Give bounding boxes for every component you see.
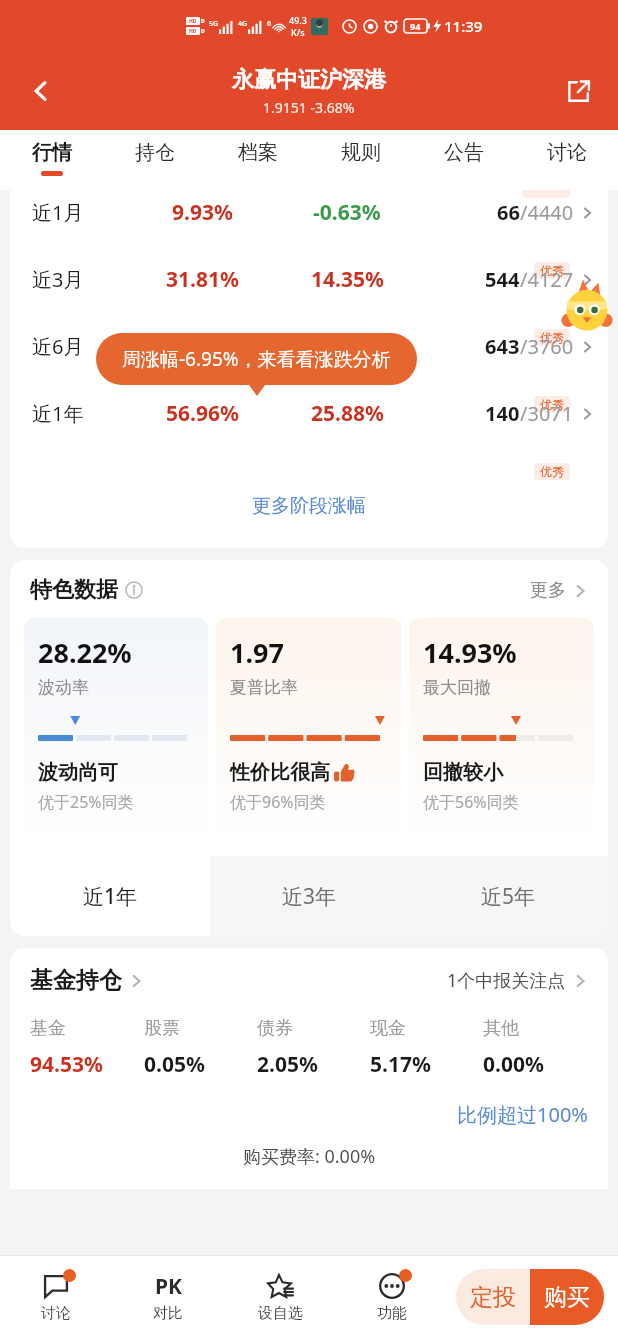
staticText: 1.97 <box>230 634 284 671</box>
staticText: 对比 <box>153 1304 183 1323</box>
button[interactable]: Info <box>125 581 143 599</box>
staticText: D <box>201 18 205 25</box>
staticText: 基金持仓 <box>30 966 122 995</box>
button[interactable]: Assistant <box>556 276 618 338</box>
staticText: 1.9151 -3.68% <box>263 98 355 117</box>
staticText: 近3年 <box>282 882 337 911</box>
button[interactable]: 讨论 <box>0 1256 112 1338</box>
staticText: 更多 <box>530 579 566 602</box>
staticText: 其他 <box>483 1017 519 1040</box>
button[interactable]: 规则 <box>309 130 412 190</box>
staticText: 行情 <box>32 140 72 165</box>
staticText: 643 <box>485 333 520 360</box>
staticText: 回撤较小 <box>423 760 503 785</box>
staticText: 功能 <box>377 1304 407 1323</box>
button[interactable]: 近1年 <box>10 856 210 936</box>
staticText: HD <box>189 18 197 25</box>
staticText: 公告 <box>444 140 484 165</box>
button[interactable]: 近3月 <box>10 265 608 332</box>
button[interactable]: 基金持仓 <box>30 966 144 995</box>
staticText: PK <box>155 1272 182 1301</box>
button[interactable]: 14.93% <box>409 618 594 840</box>
staticText: 26.95% <box>311 332 384 361</box>
button[interactable]: 行情 <box>0 130 103 190</box>
staticText: 优秀 <box>540 330 564 345</box>
button[interactable]: 28.22% <box>24 618 208 840</box>
staticText: 近5年 <box>481 882 536 911</box>
staticText: 近3月 <box>32 266 132 293</box>
button[interactable]: 定投 <box>456 1269 530 1325</box>
button[interactable]: 近1年 <box>10 399 608 466</box>
button[interactable]: 讨论 <box>515 130 618 190</box>
button[interactable]: 1.97 <box>216 618 401 840</box>
staticText: 近1月 <box>32 199 132 226</box>
staticText: 66 <box>497 199 520 226</box>
button[interactable]: 近6月 <box>10 332 608 399</box>
button[interactable]: 周涨幅-6.95%，来看看涨跌分析 <box>96 333 417 385</box>
staticText: 最大回撤 <box>423 677 491 698</box>
button[interactable]: PK <box>112 1256 224 1338</box>
button[interactable]: 更多 <box>530 579 588 602</box>
staticText: 档案 <box>238 140 278 165</box>
staticText: 9.93% <box>172 198 233 227</box>
staticText: 14.35% <box>311 265 384 294</box>
button[interactable]: 持仓 <box>103 130 206 190</box>
staticText: 现金 <box>370 1017 406 1040</box>
button[interactable]: 更多阶段涨幅 <box>10 494 608 518</box>
staticText: 特色数据 <box>30 576 118 604</box>
staticText: 140 <box>485 400 520 427</box>
staticText: 4G <box>238 19 248 29</box>
staticText: -0.63% <box>313 198 381 227</box>
staticText: 优于56%同类 <box>423 791 519 813</box>
staticText: 94 <box>410 20 421 32</box>
staticText: 持仓 <box>135 140 175 165</box>
staticText: 规则 <box>341 140 381 165</box>
staticText: 债券 <box>257 1017 293 1040</box>
button[interactable]: 设自选 <box>224 1256 336 1338</box>
staticText: 25.88% <box>311 399 384 428</box>
staticText: 优秀 <box>540 397 564 412</box>
button[interactable]: 近1月 <box>10 198 608 265</box>
button[interactable]: 1个中报关注点 <box>447 968 588 993</box>
staticText: 94.53% <box>30 1050 103 1079</box>
staticText: 5.17% <box>370 1050 431 1079</box>
staticText: /4440 <box>520 199 574 226</box>
staticText: 2.05% <box>257 1050 318 1079</box>
staticText: 定投 <box>470 1283 516 1312</box>
button[interactable]: Back <box>18 68 64 114</box>
staticText: 11:39 <box>444 16 483 36</box>
staticText: 讨论 <box>547 140 587 165</box>
button[interactable]: 公告 <box>412 130 515 190</box>
staticText: 56.96% <box>166 399 239 428</box>
staticText: /4127 <box>520 266 574 293</box>
staticText: 1个中报关注点 <box>447 968 566 993</box>
staticText: 优于25%同类 <box>38 791 134 813</box>
staticText: 性价比很高 <box>230 760 330 785</box>
staticText: K/s <box>291 26 305 38</box>
button[interactable]: 功能 <box>336 1256 448 1338</box>
staticText: 购买 <box>544 1283 590 1312</box>
staticText: 更多阶段涨幅 <box>252 494 366 518</box>
staticText: /3760 <box>520 333 574 360</box>
staticText: 近6月 <box>32 333 132 360</box>
staticText: HD <box>189 28 197 35</box>
button[interactable]: Share <box>556 68 602 114</box>
staticText: 近1年 <box>32 400 132 427</box>
staticText: 优秀 <box>540 263 564 278</box>
staticText: 40.61% <box>166 332 239 361</box>
staticText: 股票 <box>144 1017 180 1040</box>
button[interactable]: 近5年 <box>409 856 608 936</box>
button[interactable]: 档案 <box>206 130 309 190</box>
staticText: /3071 <box>520 400 574 427</box>
button[interactable]: 购买 <box>530 1269 604 1325</box>
staticText: D <box>201 28 205 35</box>
button[interactable]: 近3年 <box>210 856 409 936</box>
staticText: 永赢中证沪深港 <box>232 66 386 94</box>
staticText: 544 <box>485 266 520 293</box>
staticText: 夏普比率 <box>230 677 298 698</box>
staticText: 31.81% <box>166 265 239 294</box>
staticText: 购买费率: 0.00% <box>243 1144 376 1169</box>
staticText: 优秀 <box>540 464 564 479</box>
staticText: 优于96%同类 <box>230 791 326 813</box>
staticText: 波动率 <box>38 677 89 698</box>
